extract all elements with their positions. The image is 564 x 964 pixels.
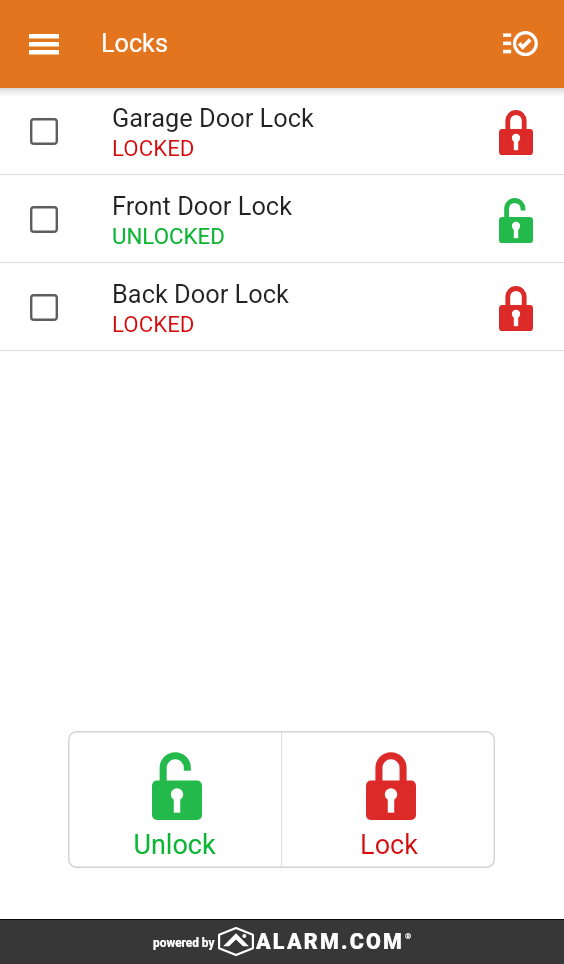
staticText: ALARM.COM (256, 929, 405, 954)
staticText: LOCKED (112, 135, 195, 161)
staticText: Front Door Lock (112, 191, 293, 221)
staticText: Lock (360, 829, 418, 861)
staticText: powered by (153, 936, 215, 950)
button[interactable]: Select Front Door Lock (16, 191, 72, 247)
button[interactable]: Lock (282, 731, 495, 868)
staticText: Back Door Lock (112, 279, 289, 309)
staticText: ® (405, 932, 412, 941)
button[interactable]: Select Garage Door Lock (0, 87, 564, 175)
button[interactable]: Select Garage Door Lock (16, 103, 72, 159)
button[interactable]: Select Back Door Lock (0, 263, 564, 351)
staticText: Locks (101, 29, 168, 59)
staticText: Unlock (133, 829, 216, 861)
staticText: LOCKED (112, 311, 195, 337)
button[interactable]: Select Front Door Lock (0, 175, 564, 263)
staticText: UNLOCKED (112, 223, 225, 249)
button[interactable]: Unlock (68, 731, 281, 868)
staticText: Garage Door Lock (112, 103, 314, 133)
button[interactable]: Select locks (492, 0, 564, 88)
button[interactable]: Select Back Door Lock (16, 279, 72, 335)
button[interactable]: Open navigation menu (0, 0, 88, 88)
